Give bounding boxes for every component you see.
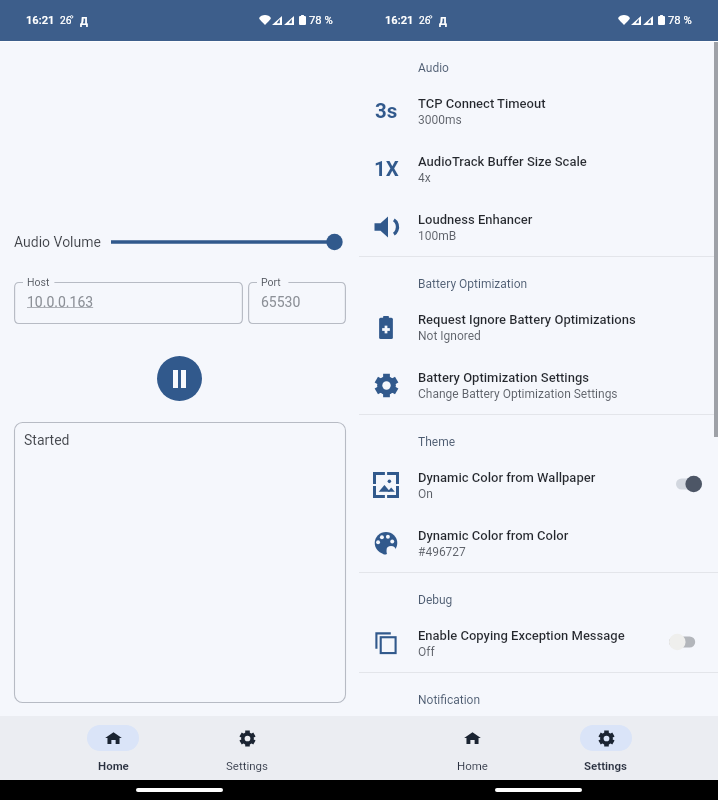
staticText: 65530 bbox=[261, 294, 301, 310]
button[interactable]: Settings bbox=[539, 716, 673, 780]
staticText: Д bbox=[80, 15, 88, 27]
button[interactable]: Battery Optimization Settings bbox=[359, 356, 718, 414]
staticText: 10.0.0.163 bbox=[27, 294, 94, 310]
staticText: Not Ignored bbox=[418, 329, 481, 343]
button[interactable]: Audio volume slider bbox=[111, 232, 343, 252]
button[interactable]: Dynamic Color from Wallpaper bbox=[359, 456, 718, 514]
staticText: 16:21 bbox=[26, 14, 55, 27]
staticText: 3000ms bbox=[418, 113, 462, 127]
staticText: Battery Optimization bbox=[418, 277, 528, 291]
staticText: Debug bbox=[418, 593, 453, 607]
staticText: Dynamic Color from Color bbox=[418, 528, 569, 543]
staticText: 4x bbox=[418, 171, 431, 185]
button[interactable]: Home bbox=[405, 716, 539, 780]
button[interactable]: Dynamic Color from Color bbox=[359, 514, 718, 572]
staticText: Д bbox=[439, 15, 447, 27]
button[interactable]: Home bbox=[46, 716, 180, 780]
staticText: Request Ignore Battery Optimizations bbox=[418, 312, 636, 327]
staticText: Host bbox=[27, 276, 50, 288]
button[interactable]: 3s bbox=[359, 82, 718, 140]
staticText: Loudness Enhancer bbox=[418, 212, 533, 227]
staticText: Dynamic Color from Wallpaper bbox=[418, 470, 596, 485]
staticText: 1X bbox=[374, 157, 399, 181]
staticText: 100mB bbox=[418, 229, 457, 243]
staticText: Settings bbox=[584, 759, 628, 772]
staticText: Audio Volume bbox=[14, 234, 101, 250]
staticText: #496727 bbox=[418, 545, 466, 559]
staticText: Battery Optimization Settings bbox=[418, 370, 589, 385]
staticText: Started bbox=[24, 432, 70, 448]
staticText: Audio bbox=[418, 61, 449, 75]
button[interactable]: Toggle on bbox=[669, 473, 702, 497]
button[interactable]: Settings bbox=[180, 716, 314, 780]
staticText: 78 % bbox=[668, 14, 692, 27]
staticText: 26 bbox=[419, 15, 431, 27]
staticText: TCP Connect Timeout bbox=[418, 96, 546, 111]
staticText: 3s bbox=[375, 99, 398, 123]
staticText: Home bbox=[98, 759, 129, 772]
button[interactable]: Toggle off bbox=[669, 631, 702, 655]
staticText: Port bbox=[261, 276, 281, 288]
staticText: 16:21 bbox=[385, 14, 414, 27]
button[interactable]: Loudness Enhancer bbox=[359, 198, 718, 256]
staticText: Theme bbox=[418, 435, 456, 449]
staticText: Home bbox=[457, 759, 488, 772]
staticText: 26 bbox=[60, 15, 72, 27]
staticText: 78 % bbox=[309, 14, 333, 27]
staticText: Off bbox=[418, 645, 435, 659]
button[interactable]: 1X bbox=[359, 140, 718, 198]
staticText: On bbox=[418, 487, 433, 501]
button[interactable]: Request Ignore Battery Optimizations bbox=[359, 298, 718, 356]
button[interactable]: Enable Copying Exception Message bbox=[359, 614, 718, 672]
staticText: Change Battery Optimization Settings bbox=[418, 387, 618, 401]
staticText: Settings bbox=[226, 759, 268, 772]
button[interactable]: Pause bbox=[157, 356, 202, 401]
staticText: Notification bbox=[418, 693, 481, 707]
staticText: Enable Copying Exception Message bbox=[418, 628, 625, 643]
staticText: AudioTrack Buffer Size Scale bbox=[418, 154, 587, 169]
